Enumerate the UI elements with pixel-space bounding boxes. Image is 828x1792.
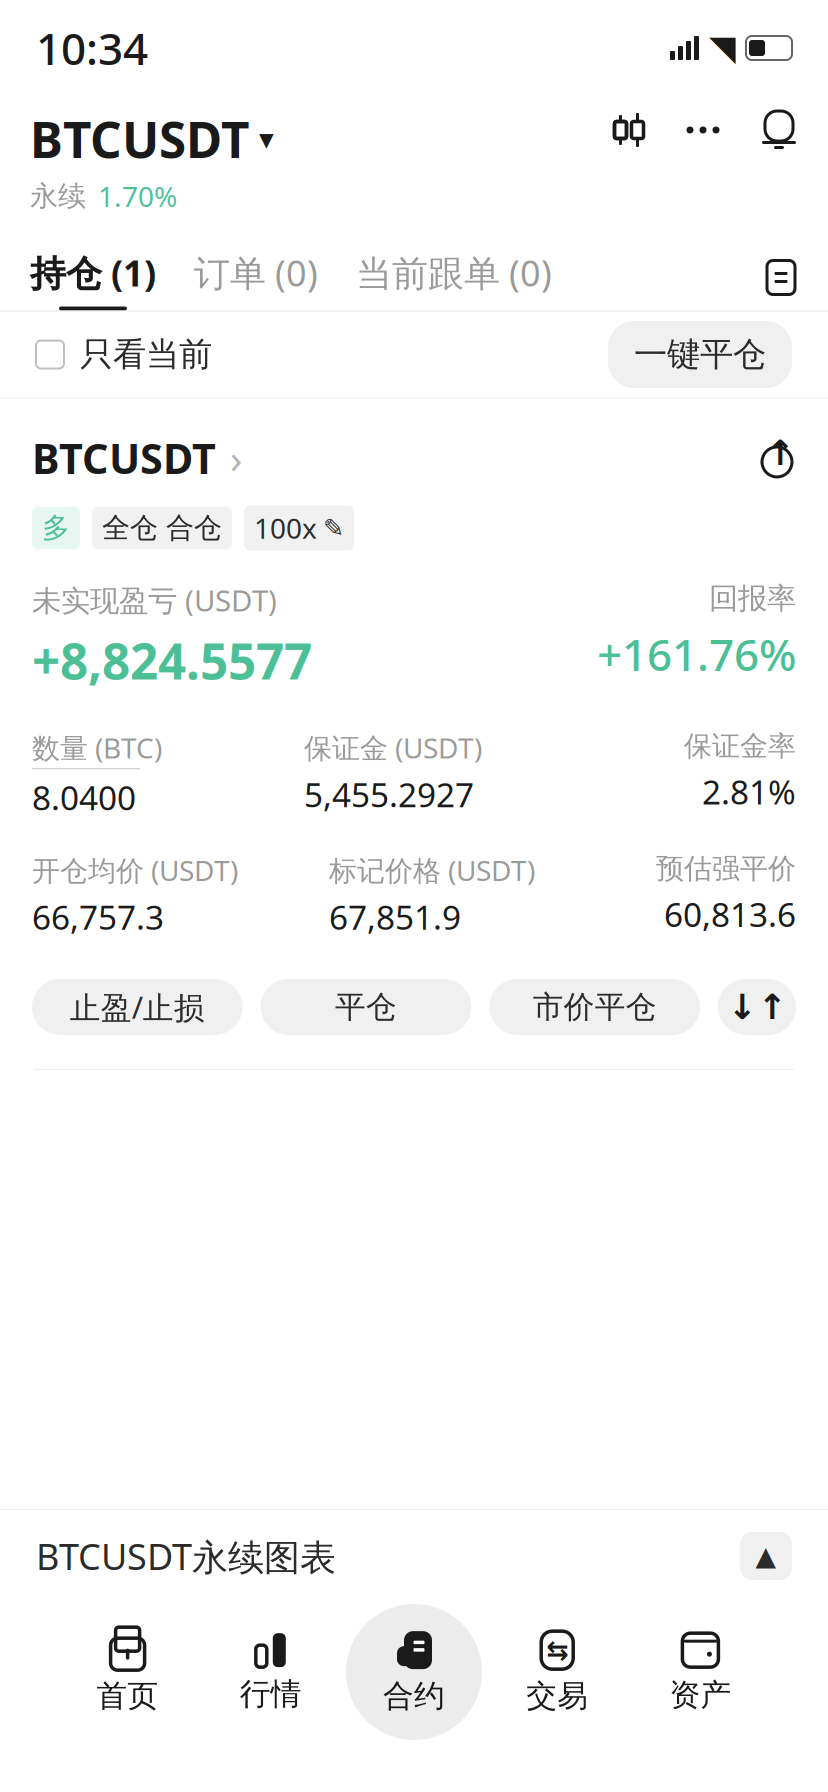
staticText: 持仓 (1) bbox=[30, 249, 156, 296]
staticText: +8,824.5577 bbox=[32, 627, 312, 693]
button[interactable]: 只看当前 bbox=[36, 334, 212, 375]
staticText: 首页 bbox=[97, 1677, 159, 1715]
staticText: 未实现盈亏 (USDT) bbox=[32, 581, 277, 620]
staticText: ▲ bbox=[755, 1541, 776, 1571]
staticText: 市价平仓 bbox=[533, 988, 657, 1026]
staticText: 2.81% bbox=[702, 769, 796, 814]
button[interactable]: 一键平仓 bbox=[608, 321, 792, 388]
staticText: BTCUSDT bbox=[32, 430, 216, 485]
staticText: ✎ bbox=[323, 514, 344, 542]
staticText: 订单 (0) bbox=[194, 249, 318, 296]
staticText: 60,813.6 bbox=[664, 892, 796, 936]
staticText: 5,455.2927 bbox=[304, 772, 474, 816]
button[interactable]: 持仓 (1) bbox=[30, 249, 156, 310]
button[interactable]: 止盈/止损 bbox=[32, 979, 243, 1035]
staticText: 永续 bbox=[30, 179, 86, 213]
staticText: ↑ bbox=[765, 433, 794, 473]
button[interactable]: ⇆ bbox=[486, 1602, 629, 1742]
staticText: 10:34 bbox=[36, 19, 148, 77]
staticText: 标记价格 (USDT) bbox=[329, 851, 535, 889]
staticText: +161.76% bbox=[597, 625, 796, 683]
button[interactable]: 平仓 bbox=[261, 979, 471, 1035]
button[interactable]: 合约 bbox=[342, 1602, 486, 1742]
staticText: 1.70% bbox=[98, 177, 177, 215]
button[interactable]: 当前跟单 (0) bbox=[356, 249, 552, 310]
button[interactable]: 首页 bbox=[56, 1602, 199, 1742]
staticText: 全仓 合仓 bbox=[102, 511, 222, 545]
staticText: 保证金率 bbox=[684, 729, 796, 763]
button[interactable]: 资产 bbox=[629, 1602, 772, 1742]
staticText: ⇆ bbox=[546, 1635, 568, 1665]
staticText: 多 bbox=[42, 511, 70, 545]
staticText: 资产 bbox=[669, 1676, 731, 1714]
staticText: 预估强平价 bbox=[656, 851, 796, 886]
staticText: 8.0400 bbox=[32, 775, 136, 819]
staticText: 平仓 bbox=[335, 988, 397, 1026]
button[interactable]: BTCUSDT bbox=[32, 430, 242, 485]
button[interactable]: BTCUSDT bbox=[30, 106, 274, 215]
staticText: 交易 bbox=[526, 1677, 588, 1715]
staticText: 保证金 (USDT) bbox=[304, 729, 482, 766]
button[interactable]: 订单 (0) bbox=[194, 249, 318, 310]
staticText: 当前跟单 (0) bbox=[356, 249, 552, 296]
button[interactable]: Chart bbox=[612, 112, 646, 148]
staticText: 66,757.3 bbox=[32, 895, 164, 939]
staticText: › bbox=[230, 431, 242, 484]
staticText: 67,851.9 bbox=[329, 895, 461, 939]
staticText: 回报率 bbox=[709, 581, 796, 617]
staticText: 止盈/止损 bbox=[70, 987, 205, 1027]
staticText: ▾ bbox=[259, 122, 274, 155]
staticText: 开仓均价 (USDT) bbox=[32, 851, 238, 889]
button[interactable]: BTCUSDT永续图表 bbox=[0, 1510, 828, 1602]
staticText: BTCUSDT bbox=[30, 106, 249, 171]
staticText: BTCUSDT永续图表 bbox=[36, 1532, 336, 1580]
staticText: 数量 (BTC) bbox=[32, 729, 162, 766]
staticText: 100x bbox=[254, 509, 317, 547]
staticText: ↑ bbox=[757, 987, 786, 1027]
staticText: 只看当前 bbox=[80, 334, 212, 375]
button[interactable]: Notifications bbox=[760, 110, 798, 150]
button[interactable]: Share bbox=[758, 438, 796, 478]
button[interactable]: 行情 bbox=[199, 1602, 342, 1742]
staticText: 一键平仓 bbox=[634, 334, 766, 375]
button[interactable]: 市价平仓 bbox=[489, 979, 700, 1035]
staticText: ◥ bbox=[709, 28, 736, 68]
button[interactable]: Order history bbox=[764, 258, 798, 296]
button[interactable]: More bbox=[684, 112, 722, 148]
staticText: ↓ bbox=[727, 987, 756, 1027]
staticText: 合约 bbox=[383, 1677, 445, 1715]
staticText: 行情 bbox=[240, 1675, 302, 1713]
button[interactable]: Reverse position bbox=[718, 979, 796, 1035]
